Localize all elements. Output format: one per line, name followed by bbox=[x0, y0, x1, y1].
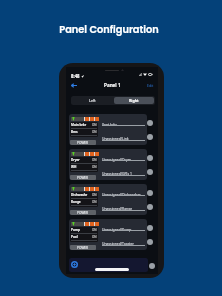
button[interactable]: Main brkr bbox=[69, 114, 147, 145]
staticText: Unassigned/GFIs 1 bbox=[102, 171, 132, 176]
button[interactable]: Help bbox=[147, 225, 153, 231]
staticText: ON bbox=[92, 200, 97, 204]
staticText: Unassigned/Dishwasher bbox=[102, 192, 141, 197]
staticText: Left bbox=[89, 98, 96, 103]
button[interactable]: Left bbox=[71, 96, 113, 105]
staticText: Bms bbox=[71, 130, 78, 134]
staticText: Pump bbox=[71, 228, 80, 232]
button[interactable]: POWER bbox=[70, 245, 96, 250]
button[interactable]: POWER bbox=[70, 140, 96, 145]
button[interactable]: Settings bbox=[149, 263, 155, 269]
staticText: Panel 1 bbox=[104, 82, 121, 88]
button[interactable]: History bbox=[147, 204, 153, 210]
staticText: Unassigned/Link bbox=[102, 136, 129, 141]
staticText: Dryer bbox=[71, 158, 80, 162]
staticText: POWER bbox=[77, 141, 89, 145]
button[interactable]: Help bbox=[147, 190, 153, 196]
button[interactable]: History bbox=[147, 134, 153, 140]
staticText: Panel Configuration bbox=[0, 23, 220, 37]
staticText: Unassigned/Pump bbox=[102, 227, 132, 232]
staticText: ON bbox=[92, 158, 97, 162]
staticText: Vent brkr bbox=[102, 122, 117, 127]
staticText: ON bbox=[92, 123, 97, 127]
staticText: POWER bbox=[77, 176, 89, 180]
staticText: WH bbox=[71, 165, 77, 169]
button[interactable]: Help bbox=[147, 155, 153, 161]
button[interactable]: History bbox=[147, 169, 153, 175]
staticText: Right bbox=[129, 98, 139, 103]
staticText: Pool bbox=[71, 235, 78, 239]
staticText: Main brkr bbox=[71, 123, 87, 127]
staticText: POWER bbox=[77, 246, 89, 250]
staticText: Range bbox=[71, 200, 81, 204]
button[interactable]: Edit bbox=[145, 79, 155, 91]
staticText: Unassigned/Range bbox=[102, 206, 133, 211]
button[interactable]: POWER bbox=[70, 210, 96, 215]
staticText: Edit bbox=[147, 83, 154, 88]
staticText: ON bbox=[92, 130, 97, 134]
staticText: Dishwashr bbox=[71, 193, 88, 197]
staticText: 8:48 bbox=[71, 73, 80, 79]
staticText: ON bbox=[92, 235, 97, 239]
staticText: Unassigned/Dryer bbox=[102, 157, 131, 162]
button[interactable]: POWER bbox=[70, 175, 96, 180]
button[interactable]: History bbox=[147, 239, 153, 245]
button[interactable]: Dishwashr bbox=[69, 184, 147, 215]
staticText: ON bbox=[92, 165, 97, 169]
staticText: ON bbox=[92, 193, 97, 197]
staticText: ON bbox=[92, 228, 97, 232]
button[interactable]: Pump bbox=[69, 219, 147, 250]
button[interactable]: Dryer bbox=[69, 149, 147, 180]
staticText: POWER bbox=[77, 211, 89, 215]
button[interactable]: Add panel bbox=[68, 258, 80, 270]
button[interactable]: Right bbox=[114, 97, 154, 104]
button[interactable]: Back bbox=[68, 79, 79, 91]
button[interactable]: Help bbox=[147, 120, 153, 126]
staticText: Unassigned/Toaster bbox=[102, 241, 134, 246]
